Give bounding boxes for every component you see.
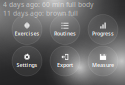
button[interactable]: Exercises (12, 14, 42, 44)
staticText: Exercises (14, 30, 39, 37)
button[interactable]: Export (50, 46, 80, 76)
button[interactable]: Routines (50, 14, 80, 44)
staticText: 4 days ago: 60 min full body (3, 0, 94, 9)
button[interactable]: Progress (88, 14, 118, 44)
button[interactable]: Measure (88, 46, 118, 76)
staticText: Routines (54, 30, 76, 37)
staticText: Settings (16, 61, 37, 69)
staticText: Export (57, 61, 73, 69)
staticText: Progress (92, 30, 114, 37)
staticText: Measure (92, 61, 114, 69)
staticText: 11 days ago: brown full (3, 9, 78, 18)
button[interactable]: Settings (12, 46, 42, 76)
